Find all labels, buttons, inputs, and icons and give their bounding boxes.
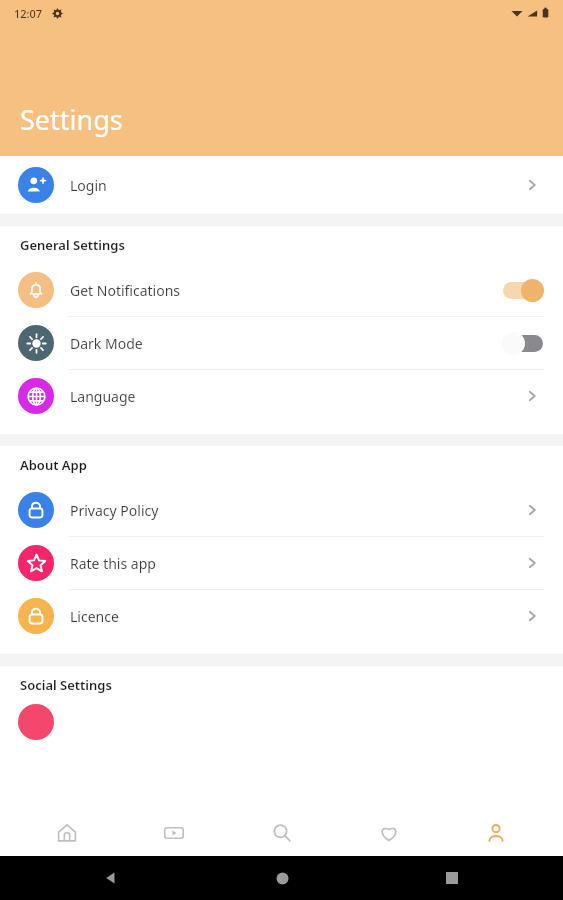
button[interactable]: Back (51, 856, 171, 900)
button[interactable]: Licence (0, 590, 563, 642)
button[interactable]: Language (0, 370, 563, 422)
button[interactable]: Privacy Policy (0, 484, 563, 536)
staticText: Rate this app (70, 554, 519, 573)
button[interactable]: Dark Mode (0, 317, 563, 369)
other: Open (519, 172, 545, 198)
other: Open (519, 383, 545, 409)
button[interactable]: Videos (134, 809, 214, 856)
button[interactable]: Toggle off (501, 330, 545, 356)
button[interactable]: Rate this app (0, 537, 563, 589)
other: Open (519, 603, 545, 629)
staticText: Language (70, 387, 519, 406)
staticText: Social Settings (20, 676, 112, 694)
staticText: About App (20, 456, 87, 474)
button[interactable]: Favorites (349, 809, 429, 856)
staticText: 12:07 (14, 6, 43, 21)
staticText: Settings (20, 101, 123, 138)
staticText: General Settings (20, 236, 125, 254)
button[interactable]: Profile (456, 809, 536, 856)
other: Open (519, 550, 545, 576)
staticText: Privacy Policy (70, 501, 519, 520)
button[interactable]: Recents (392, 856, 512, 900)
button[interactable]: Get Notifications (0, 264, 563, 316)
staticText: Get Notifications (70, 281, 501, 300)
staticText: Login (70, 176, 519, 195)
staticText: Dark Mode (70, 334, 501, 353)
staticText: Licence (70, 607, 519, 626)
other: Open (519, 497, 545, 523)
button[interactable]: Login (0, 156, 563, 214)
button[interactable]: Home (222, 856, 342, 900)
button[interactable]: Search (242, 809, 322, 856)
button[interactable]: Toggle on (501, 277, 545, 303)
button[interactable]: Home (27, 809, 107, 856)
